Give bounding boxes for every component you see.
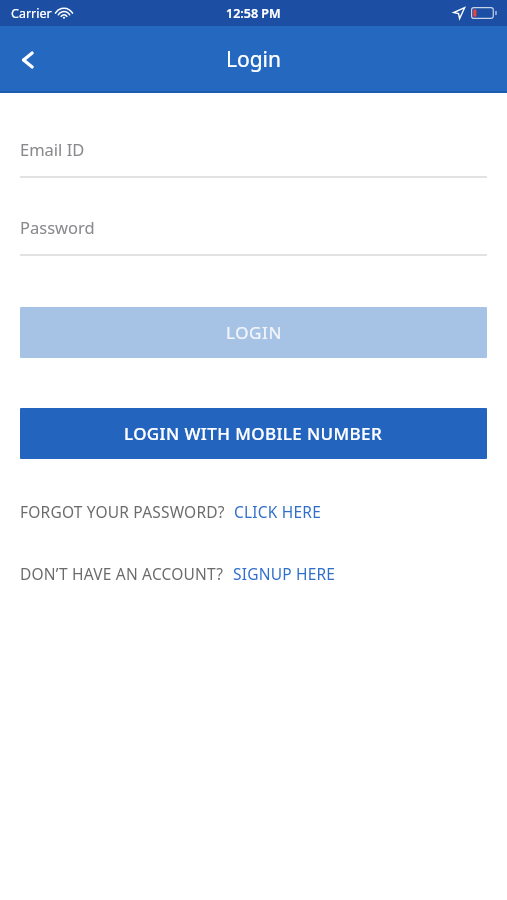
button[interactable]: Back [0,32,56,88]
button[interactable]: FORGOT YOUR PASSWORD? [20,496,487,526]
button[interactable]: Password [0,212,507,256]
staticText: SIGNUP HERE [233,563,336,584]
staticText: FORGOT YOUR PASSWORD? [20,501,225,522]
staticText: CLICK HERE [234,501,321,522]
staticText: Email ID [20,138,85,160]
staticText: DON’T HAVE AN ACCOUNT? [20,563,224,584]
staticText: 12:58 PM [226,5,281,22]
staticText: Login [226,45,282,74]
button[interactable]: LOGIN WITH MOBILE NUMBER [20,408,487,459]
staticText: LOGIN [226,321,282,344]
button[interactable]: Email ID [0,134,507,178]
staticText: Password [20,216,95,238]
button[interactable]: DON’T HAVE AN ACCOUNT? [20,558,487,588]
button[interactable]: LOGIN [20,307,487,358]
staticText: Carrier [11,5,52,22]
staticText: LOGIN WITH MOBILE NUMBER [124,422,383,445]
